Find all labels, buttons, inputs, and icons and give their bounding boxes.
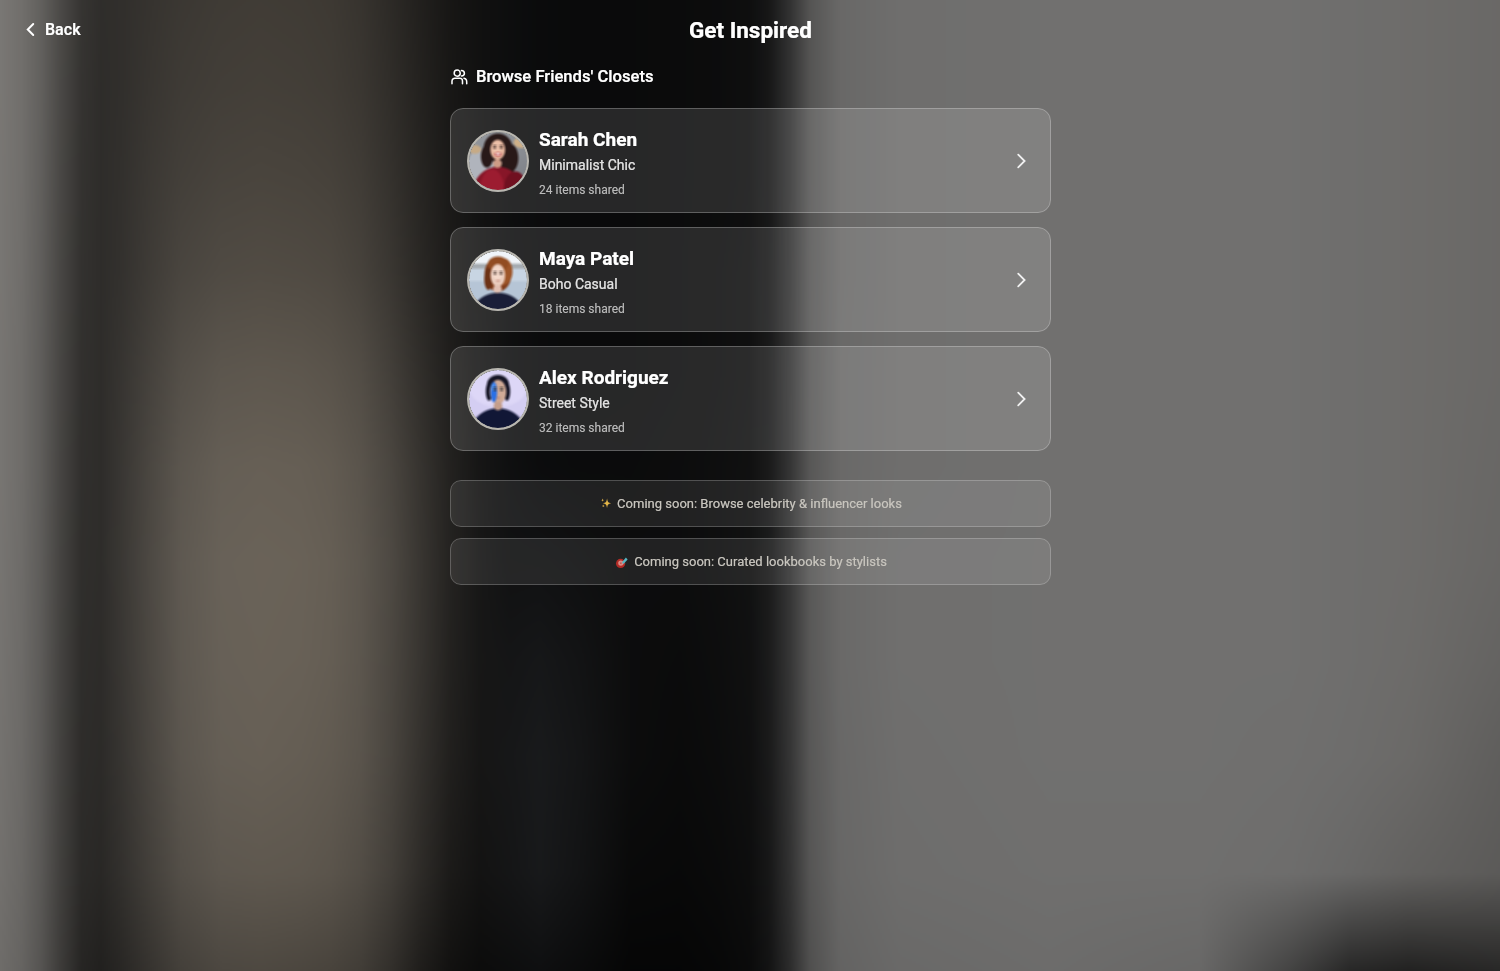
staticText: 24 items shared — [539, 183, 625, 197]
staticText: 32 items shared — [539, 421, 625, 435]
staticText: Street Style — [539, 395, 610, 411]
button[interactable]: Open Maya Patel's closet — [1011, 270, 1031, 290]
button[interactable]: Back — [16, 15, 87, 44]
button[interactable]: Maya Patel — [450, 227, 1051, 332]
staticText: Sarah Chen — [539, 128, 638, 150]
button[interactable]: Sarah Chen — [450, 108, 1051, 213]
button[interactable]: Coming soon: Curated lookbooks by stylis… — [450, 538, 1051, 585]
button[interactable]: Open Sarah Chen's closet — [1011, 151, 1031, 171]
staticText: Coming soon: Curated lookbooks by stylis… — [634, 554, 887, 569]
staticText: 18 items shared — [539, 302, 625, 316]
staticText: Get Inspired — [689, 17, 812, 43]
staticText: Boho Casual — [539, 276, 618, 292]
staticText: Maya Patel — [539, 247, 635, 269]
staticText: Minimalist Chic — [539, 157, 636, 173]
button[interactable]: Open Alex Rodriguez's closet — [1011, 389, 1031, 409]
staticText: Coming soon: Browse celebrity & influenc… — [617, 496, 902, 511]
button[interactable]: Alex Rodriguez — [450, 346, 1051, 451]
button[interactable]: Coming soon: Browse celebrity & influenc… — [450, 480, 1051, 527]
staticText: Browse Friends' Closets — [476, 67, 654, 86]
staticText: Back — [45, 20, 81, 39]
staticText: Alex Rodriguez — [539, 366, 669, 388]
